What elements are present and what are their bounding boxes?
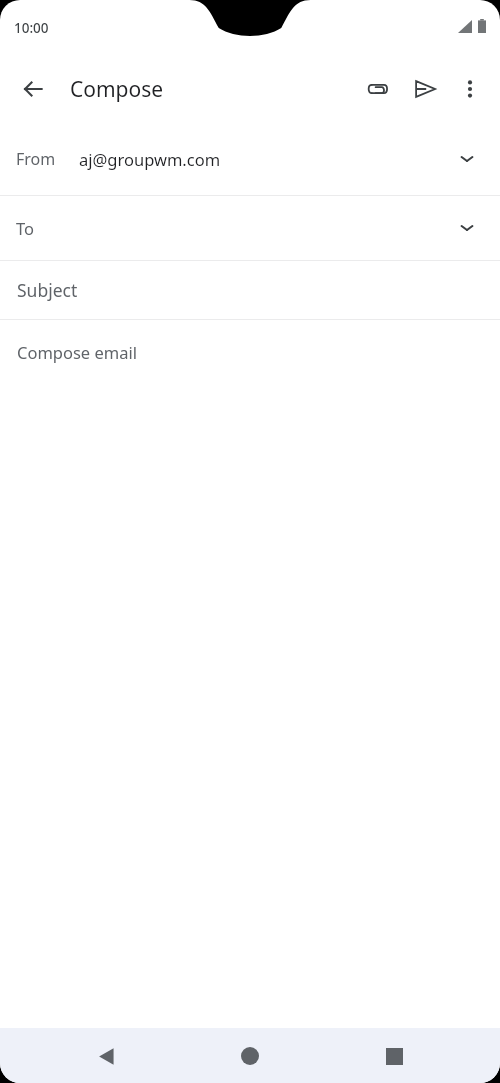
other: Expand recipients bbox=[450, 211, 484, 245]
button[interactable]: Back bbox=[9, 65, 57, 113]
button[interactable]: Back bbox=[83, 1032, 131, 1080]
staticText: Subject bbox=[17, 278, 78, 302]
staticText: aj@groupwm.com bbox=[79, 148, 221, 170]
button[interactable]: Home bbox=[226, 1032, 274, 1080]
button[interactable]: From bbox=[0, 122, 500, 195]
button[interactable]: More options bbox=[448, 67, 492, 111]
staticText: Compose bbox=[70, 75, 164, 104]
other: Expand sender bbox=[450, 142, 484, 176]
button[interactable]: Recent apps bbox=[370, 1032, 418, 1080]
staticText: Compose email bbox=[17, 341, 137, 363]
button[interactable]: Compose email bbox=[0, 320, 500, 384]
staticText: To bbox=[16, 217, 35, 239]
button[interactable]: Attach file bbox=[356, 66, 402, 112]
button[interactable]: To bbox=[0, 196, 500, 260]
button[interactable]: Send bbox=[402, 66, 448, 112]
button[interactable]: Subject bbox=[0, 261, 500, 319]
staticText: 10:00 bbox=[14, 19, 49, 37]
staticText: From bbox=[16, 148, 56, 170]
